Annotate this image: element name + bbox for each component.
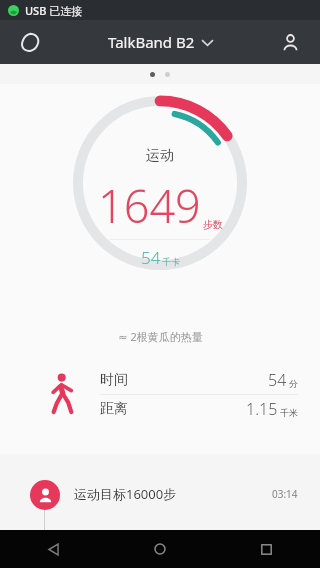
staticText: 1649 [98,175,201,236]
staticText: 步数 [203,218,223,231]
button[interactable]: Band [10,22,50,62]
button[interactable]: 运动目标16000步 [0,472,320,530]
staticText: 运动 [146,147,174,165]
staticText: 03:14 [272,487,298,501]
button[interactable]: Home [106,530,213,568]
button[interactable]: Profile [270,22,310,62]
button[interactable]: 距离 [100,395,298,423]
staticText: 54 [141,246,161,269]
button[interactable]: Recents [213,530,320,568]
staticText: 运动目标16000步 [74,485,177,503]
staticText: ≈ 2根黄瓜的热量 [118,329,203,344]
staticText: 千卡 [162,256,180,267]
staticText: 54 [268,369,287,391]
button[interactable]: Back [0,530,106,568]
staticText: 时间 [100,371,128,389]
button[interactable]: TalkBand B2 [108,32,213,52]
button[interactable]: 时间 [100,366,298,394]
staticText: 1.15 [246,398,278,420]
staticText: TalkBand B2 [108,32,195,52]
staticText: 千米 [280,407,298,418]
staticText: 分 [289,378,298,389]
staticText: USB 已连接 [25,3,83,18]
staticText: 距离 [100,400,128,418]
